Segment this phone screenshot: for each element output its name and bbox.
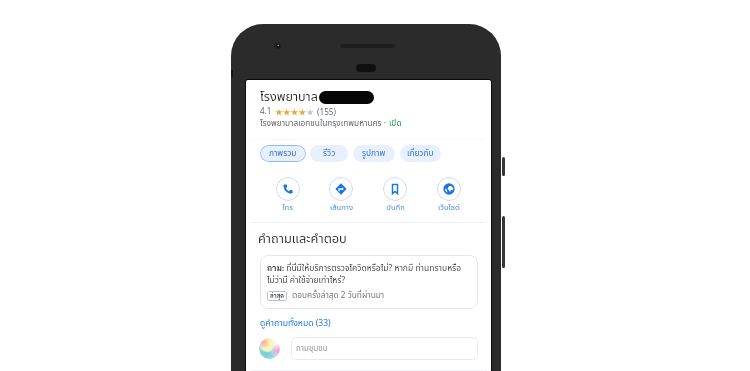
- staticText: ตอบครั้งล่าสุด 2 วันที่ผ่านมา: [292, 289, 385, 302]
- staticText: บันทึก: [386, 202, 405, 213]
- staticText: รูปภาพ: [362, 147, 386, 160]
- button[interactable]: Save: [368, 177, 422, 213]
- button[interactable]: Call: [261, 177, 314, 213]
- staticText: เส้นทาง: [330, 202, 353, 213]
- staticText: โรงพยาบาล: [260, 88, 318, 107]
- staticText: โทร: [282, 202, 293, 213]
- staticText: เว็บไซต์: [438, 202, 460, 213]
- button[interactable]: เกี่ยวกับ: [400, 145, 441, 162]
- staticText: ถาม: ที่นี่มีให้บริการตรวจโควิดหรือไม่? …: [267, 262, 467, 287]
- button[interactable]: Directions: [314, 177, 368, 213]
- staticText: 4.1: [260, 106, 272, 118]
- staticText: โรงพยาบาลเอกชนในกรุงเทพมหานคร ·: [260, 117, 389, 130]
- staticText: (155): [317, 106, 336, 118]
- button[interactable]: ถามชุมชน: [291, 337, 478, 360]
- button[interactable]: ถาม: ที่นี่มีให้บริการตรวจโควิดหรือไม่? …: [260, 255, 478, 309]
- staticText: รีวิว: [323, 147, 336, 160]
- button[interactable]: Website: [422, 177, 476, 213]
- staticText: ภาพรวม: [269, 147, 297, 160]
- button[interactable]: รีวิว: [310, 145, 348, 162]
- button[interactable]: ดูคำถามทั้งหมด (33): [260, 317, 331, 330]
- staticText: ล่าสุด: [270, 292, 284, 300]
- staticText: คำถามและคำตอบ: [258, 229, 347, 248]
- staticText: เกี่ยวกับ: [407, 147, 434, 160]
- button[interactable]: รูปภาพ: [353, 145, 395, 162]
- button[interactable]: ภาพรวม: [260, 145, 306, 162]
- staticText: ถามชุมชน: [296, 343, 328, 355]
- staticText: เปิด: [389, 117, 402, 130]
